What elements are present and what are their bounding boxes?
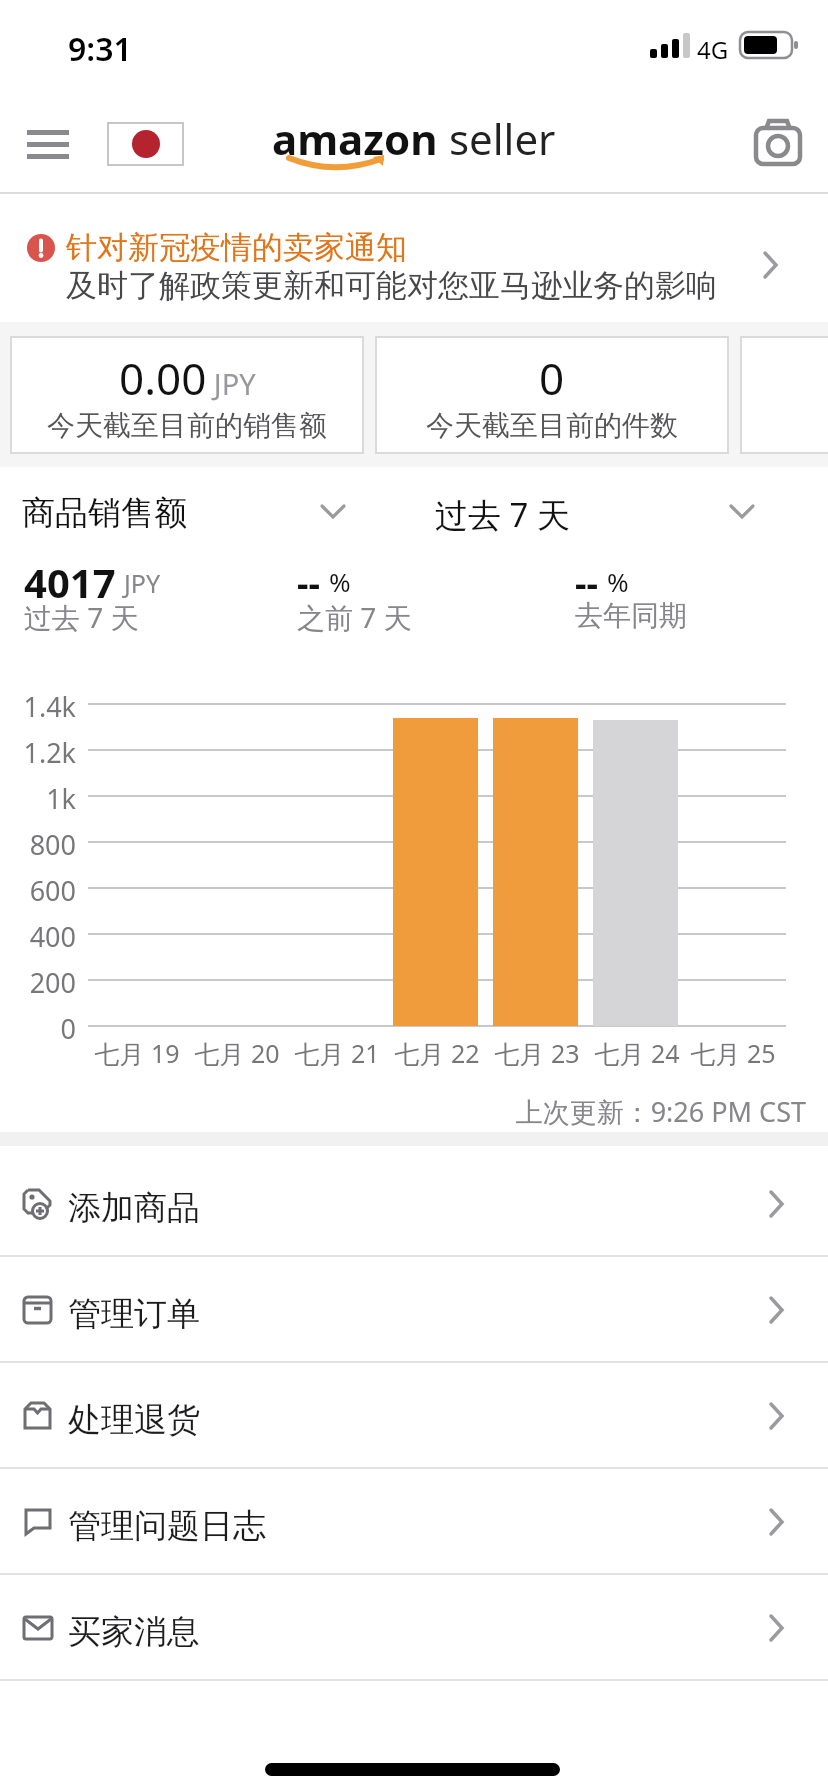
staticText: 买家消息 (68, 1611, 200, 1653)
button[interactable]: 处理退货 (0, 1363, 828, 1469)
staticText: 200 (0, 964, 76, 1001)
staticText: 0 (539, 348, 565, 408)
button[interactable]: 0.00 JPY (10, 336, 364, 454)
staticText: 添加商品 (68, 1187, 200, 1229)
staticText: -- (575, 558, 599, 607)
staticText: 600 (0, 872, 76, 909)
button[interactable]: 管理订单 (0, 1257, 828, 1363)
staticText: 上次更新：9:26 PM CST (0, 1093, 806, 1130)
staticText: 4G (697, 33, 729, 66)
staticText: -- (297, 558, 321, 607)
button[interactable]: 商品销售额 (22, 492, 187, 534)
staticText: 1k (0, 780, 76, 817)
staticText: 七月 20 (177, 1036, 297, 1070)
button[interactable]: 买家消息 (0, 1575, 828, 1681)
button[interactable] (748, 116, 806, 172)
staticText: 七月 21 (277, 1036, 397, 1070)
staticText: 及时了解政策更新和可能对您亚马逊业务的影响 (66, 266, 717, 305)
staticText: 今天截至目前的销售额 (47, 408, 327, 443)
staticText: 七月 19 (77, 1036, 197, 1070)
button[interactable] (24, 120, 72, 168)
staticText: 针对新冠疫情的卖家通知 (66, 228, 407, 267)
button[interactable]: 针对新冠疫情的卖家通知 (0, 194, 828, 310)
staticText: 9:31 (68, 27, 132, 71)
button[interactable]: 管理问题日志 (0, 1469, 828, 1575)
staticText: % (607, 564, 629, 599)
staticText: 4017 (24, 555, 116, 609)
staticText: 之前 7 天 (297, 598, 412, 636)
staticText: 七月 22 (377, 1036, 497, 1070)
staticText: 1.4k (0, 688, 76, 725)
button[interactable]: 0 (375, 336, 729, 454)
staticText: amazon (272, 110, 438, 167)
staticText: 七月 25 (673, 1036, 793, 1070)
staticText: 管理问题日志 (68, 1505, 266, 1547)
staticText: 去年同期 (575, 598, 687, 633)
button[interactable]: 添加商品 (0, 1151, 828, 1257)
staticText: 400 (0, 918, 76, 955)
button[interactable] (107, 122, 184, 166)
staticText: JPY (124, 566, 161, 600)
staticText: % (329, 564, 351, 599)
staticText: 过去 7 天 (24, 598, 139, 636)
staticText: 七月 24 (577, 1036, 697, 1070)
button[interactable]: 过去 7 天 (435, 492, 571, 537)
staticText: 处理退货 (68, 1399, 200, 1441)
staticText: 今天截至目前的件数 (426, 408, 678, 443)
staticText: 管理订单 (68, 1293, 200, 1335)
staticText: 1.2k (0, 734, 76, 771)
staticText: 0.00 JPY (119, 348, 256, 408)
staticText: seller (438, 110, 556, 167)
staticText: 0 (0, 1010, 76, 1047)
staticText: 800 (0, 826, 76, 863)
staticText: 七月 23 (477, 1036, 597, 1070)
